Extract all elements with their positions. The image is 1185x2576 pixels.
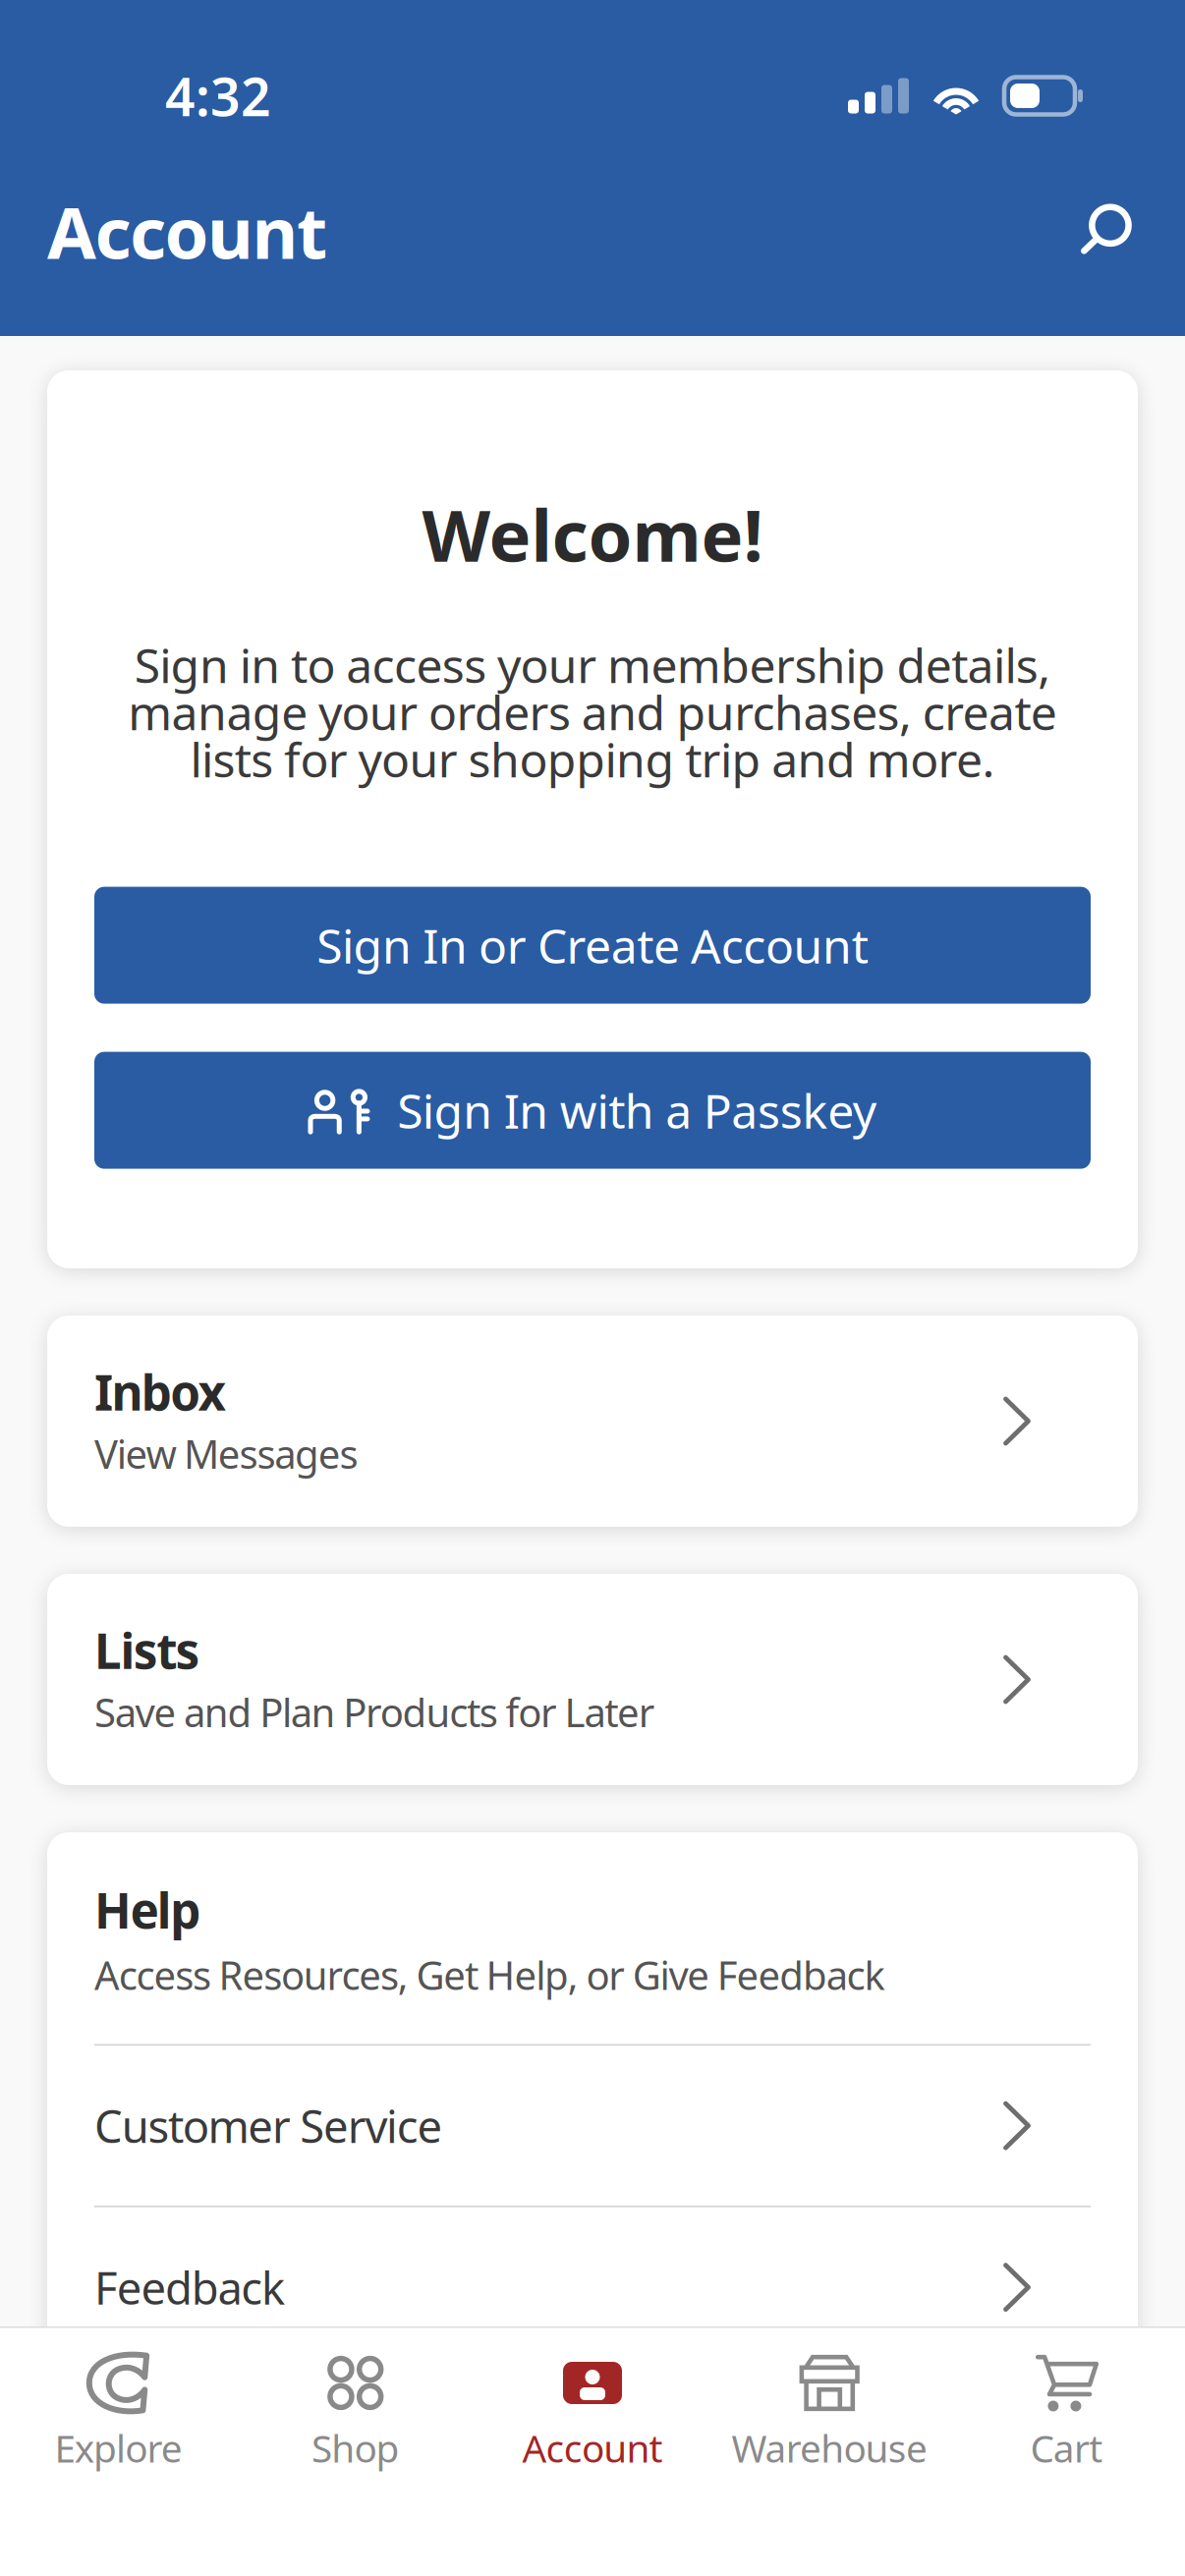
- staticText: 4:32: [165, 61, 271, 131]
- staticText: Cart: [1030, 2423, 1103, 2473]
- button[interactable]: Search: [1061, 187, 1150, 276]
- staticText: Shop: [311, 2423, 400, 2473]
- staticText: lists for your shopping trip and more.: [190, 728, 995, 790]
- button[interactable]: Lists: [47, 1574, 1138, 1785]
- staticText: Warehouse: [731, 2423, 928, 2473]
- button[interactable]: Shop: [237, 2325, 474, 2468]
- staticText: Lists: [94, 1618, 200, 1682]
- button[interactable]: Feedback: [47, 2207, 1138, 2367]
- button[interactable]: Sign In or Create Account: [94, 887, 1091, 1004]
- staticText: Save and Plan Products for Later: [94, 1686, 655, 1738]
- button[interactable]: Explore: [0, 2325, 237, 2468]
- staticText: Customer Service: [94, 2096, 443, 2155]
- staticText: Help: [94, 1877, 201, 1942]
- button[interactable]: Cart: [948, 2325, 1185, 2468]
- staticText: manage your orders and purchases, create: [128, 681, 1057, 743]
- staticText: Inbox: [94, 1359, 227, 1424]
- staticText: Account: [47, 184, 327, 278]
- staticText: Access Resources, Get Help, or Give Feed…: [94, 1949, 885, 2001]
- button[interactable]: Customer Service: [47, 2046, 1138, 2206]
- button[interactable]: Sign In with a Passkey: [94, 1052, 1091, 1169]
- staticText: About Costco: [94, 2419, 358, 2478]
- staticText: Welcome!: [422, 487, 763, 581]
- button[interactable]: Inbox: [47, 1316, 1138, 1527]
- staticText: Account: [522, 2423, 663, 2473]
- button[interactable]: Account: [474, 2325, 711, 2468]
- staticText: Feedback: [94, 2258, 285, 2317]
- staticText: Sign in to access your membership detail…: [134, 633, 1051, 696]
- staticText: View Messages: [94, 1427, 358, 1480]
- button[interactable]: About Costco: [47, 2369, 1138, 2529]
- button[interactable]: Warehouse: [711, 2325, 948, 2468]
- staticText: Explore: [55, 2423, 182, 2473]
- staticText: Sign In with a Passkey: [397, 1079, 876, 1142]
- staticText: Sign In or Create Account: [317, 914, 868, 976]
